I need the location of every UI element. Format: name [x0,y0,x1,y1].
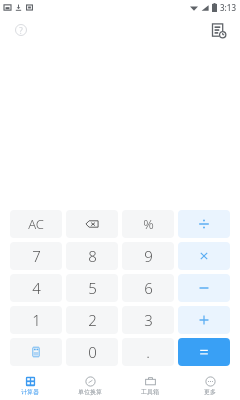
button[interactable]: 0 [66,338,118,366]
staticText: 工具箱 [141,388,159,396]
button[interactable]: 更多 [180,372,240,400]
button[interactable]: 5 [66,274,118,302]
staticText: . [146,342,150,362]
button[interactable]: Plus [178,306,230,334]
staticText: 4 [32,278,41,298]
button[interactable]: AC [10,210,62,238]
staticText: ? [19,25,23,36]
button[interactable]: Scientific mode [10,338,62,366]
staticText: 8 [88,246,97,266]
button[interactable]: Divide [178,210,230,238]
button[interactable]: 7 [10,242,62,270]
button[interactable]: 6 [122,274,174,302]
staticText: 计算器 [21,388,39,396]
button[interactable]: 计算器 [0,372,60,400]
button[interactable]: 9 [122,242,174,270]
staticText: 单位换算 [78,388,102,396]
button[interactable]: History [206,18,230,42]
staticText: 更多 [204,388,216,396]
button[interactable]: Multiply [178,242,230,270]
staticText: 3:13 [220,2,236,13]
button[interactable]: 8 [66,242,118,270]
button[interactable]: 1 [10,306,62,334]
staticText: 6 [144,278,153,298]
button[interactable]: % [122,210,174,238]
button[interactable]: Equals [178,338,230,366]
staticText: 2 [88,310,97,330]
button[interactable]: 单位换算 [60,372,120,400]
button[interactable]: . [122,338,174,366]
staticText: 7 [32,246,41,266]
button[interactable]: 2 [66,306,118,334]
button[interactable]: Backspace [66,210,118,238]
staticText: 3 [144,310,153,330]
button[interactable]: Minus [178,274,230,302]
staticText: 0 [88,342,97,362]
button[interactable]: 3 [122,306,174,334]
staticText: 9 [144,246,153,266]
button[interactable]: 工具箱 [120,372,180,400]
staticText: 1 [32,310,41,330]
button[interactable]: Help [10,19,32,41]
staticText: % [143,215,154,233]
staticText: AC [28,215,44,233]
button[interactable]: 4 [10,274,62,302]
staticText: 5 [88,278,97,298]
